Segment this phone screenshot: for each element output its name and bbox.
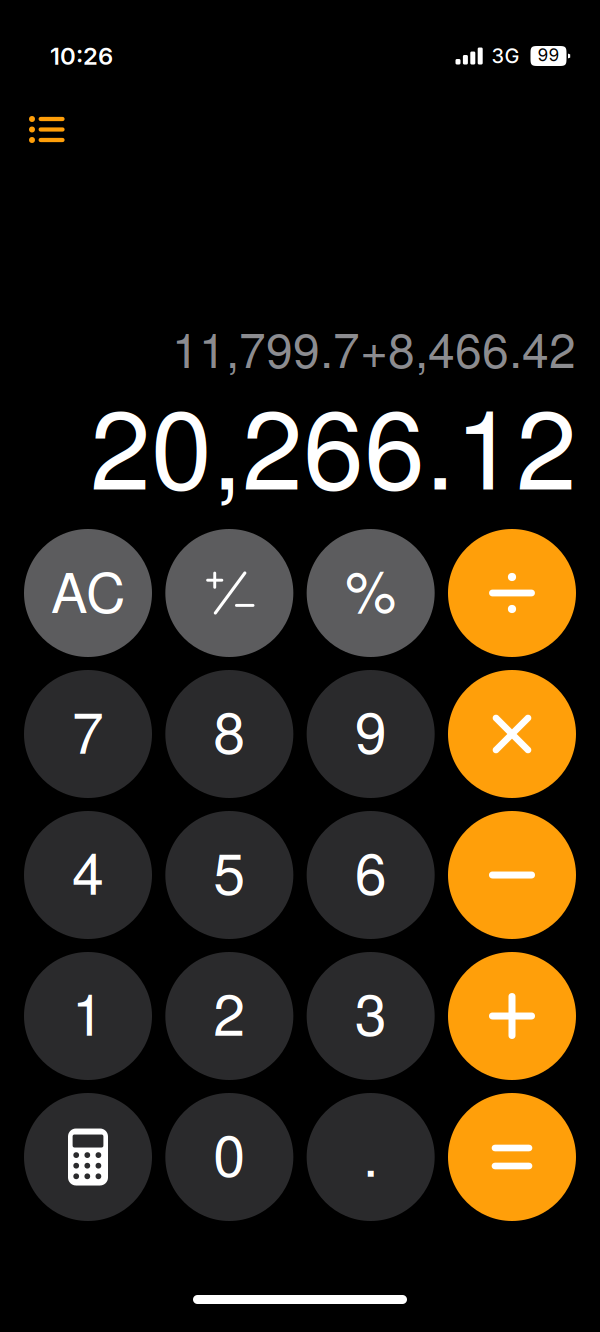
staticText: 8: [213, 688, 245, 770]
button[interactable]: Scientific calculator: [24, 1093, 152, 1221]
staticText: 5: [213, 829, 245, 911]
staticText: 0: [213, 1111, 245, 1193]
button[interactable]: Multiply: [448, 670, 576, 798]
staticText: .: [363, 1111, 379, 1193]
staticText: 1: [72, 970, 104, 1052]
button[interactable]: Subtract: [448, 811, 576, 939]
button[interactable]: 8: [165, 670, 293, 798]
button[interactable]: .: [307, 1093, 435, 1221]
staticText: 9: [355, 688, 387, 770]
button[interactable]: Add: [448, 952, 576, 1080]
button[interactable]: 1: [24, 952, 152, 1080]
button[interactable]: 4: [24, 811, 152, 939]
button[interactable]: 7: [24, 670, 152, 798]
staticText: %: [345, 547, 396, 629]
staticText: 20,266.12: [90, 364, 577, 521]
staticText: 10:26: [50, 41, 113, 70]
staticText: 99: [537, 44, 559, 65]
button[interactable]: 5: [165, 811, 293, 939]
button[interactable]: Divide: [448, 529, 576, 657]
button[interactable]: 6: [307, 811, 435, 939]
button[interactable]: 2: [165, 952, 293, 1080]
staticText: 3: [355, 970, 387, 1052]
button[interactable]: Equals: [448, 1093, 576, 1221]
button[interactable]: %: [307, 529, 435, 657]
button[interactable]: History: [0, 103, 86, 156]
staticText: 7: [72, 688, 104, 770]
button[interactable]: AC: [24, 529, 152, 657]
staticText: 3G: [491, 44, 519, 68]
staticText: 11,799.7+8,466.42: [172, 313, 576, 382]
button[interactable]: 0: [165, 1093, 293, 1221]
staticText: 4: [72, 829, 104, 911]
staticText: AC: [51, 550, 125, 629]
button[interactable]: 9: [307, 670, 435, 798]
button[interactable]: 3: [307, 952, 435, 1080]
staticText: 6: [355, 829, 387, 911]
staticText: 2: [213, 970, 245, 1052]
button[interactable]: Plus minus: [165, 529, 293, 657]
